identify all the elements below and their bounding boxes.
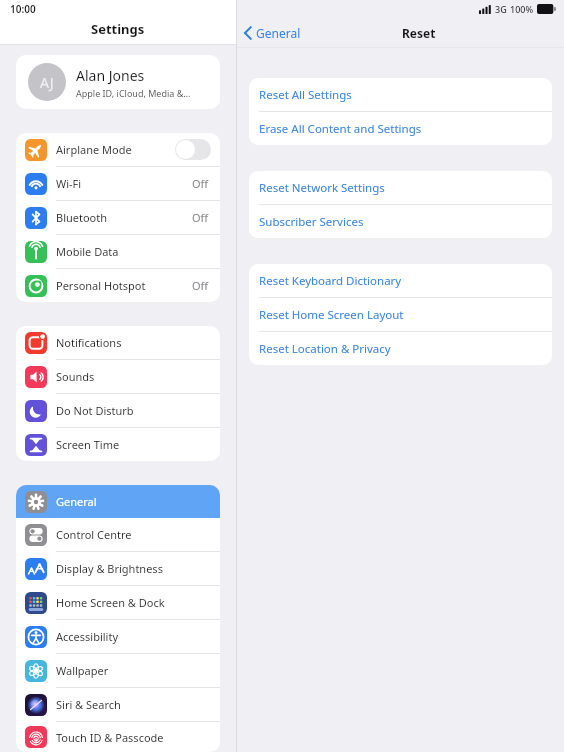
button[interactable]: Screen Time bbox=[16, 428, 220, 461]
button[interactable]: Reset Home Screen Layout bbox=[249, 298, 552, 331]
staticText: Reset All Settings bbox=[259, 87, 352, 103]
staticText: Touch ID & Passcode bbox=[56, 730, 211, 745]
button[interactable]: Bluetooth bbox=[16, 201, 220, 234]
staticText: Alan Jones bbox=[76, 66, 145, 85]
staticText: Erase All Content and Settings bbox=[259, 121, 422, 137]
staticText: Off bbox=[192, 176, 209, 191]
staticText: Display & Brightness bbox=[56, 561, 211, 576]
button[interactable]: Notifications bbox=[16, 326, 220, 359]
staticText: Siri & Search bbox=[56, 697, 211, 712]
button[interactable]: General bbox=[16, 485, 220, 518]
button[interactable]: Reset Location & Privacy bbox=[249, 332, 552, 365]
staticText: Screen Time bbox=[56, 437, 211, 452]
button[interactable]: Sounds bbox=[16, 360, 220, 393]
staticText: Wi-Fi bbox=[56, 176, 192, 191]
staticText: Notifications bbox=[56, 335, 211, 350]
staticText: Sounds bbox=[56, 369, 211, 384]
button[interactable]: Accessibility bbox=[16, 620, 220, 653]
staticText: General bbox=[56, 494, 211, 509]
staticText: 10:00 bbox=[10, 2, 36, 16]
staticText: Bluetooth bbox=[56, 210, 192, 225]
staticText: Control Centre bbox=[56, 527, 211, 542]
staticText: Off bbox=[192, 210, 209, 225]
button[interactable]: Mobile Data bbox=[16, 235, 220, 268]
staticText: Off bbox=[192, 278, 209, 293]
staticText: Settings bbox=[91, 20, 145, 38]
staticText: Personal Hotspot bbox=[56, 278, 192, 293]
staticText: Apple ID, iCloud, Media &… bbox=[76, 87, 191, 99]
button[interactable]: Airplane Mode bbox=[16, 133, 220, 166]
staticText: Subscriber Services bbox=[259, 214, 364, 230]
button[interactable]: Erase All Content and Settings bbox=[249, 112, 552, 145]
button[interactable]: Wi-Fi bbox=[16, 167, 220, 200]
button[interactable]: Do Not Disturb bbox=[16, 394, 220, 427]
button[interactable]: Airplane Mode toggle bbox=[175, 139, 211, 160]
staticText: Reset bbox=[402, 25, 436, 41]
staticText: Reset Keyboard Dictionary bbox=[259, 273, 402, 289]
button[interactable]: Personal Hotspot bbox=[16, 269, 220, 302]
button[interactable]: AJ bbox=[16, 55, 220, 109]
staticText: Home Screen & Dock bbox=[56, 595, 211, 610]
button[interactable]: Wallpaper bbox=[16, 654, 220, 687]
staticText: AJ bbox=[40, 73, 54, 92]
button[interactable]: Subscriber Services bbox=[249, 205, 552, 238]
button[interactable]: Siri & Search bbox=[16, 688, 220, 721]
staticText: Airplane Mode bbox=[56, 142, 175, 157]
staticText: General bbox=[256, 25, 301, 41]
button[interactable]: Display & Brightness bbox=[16, 552, 220, 585]
staticText: Accessibility bbox=[56, 629, 211, 644]
staticText: Reset Location & Privacy bbox=[259, 341, 391, 357]
button[interactable]: Reset Keyboard Dictionary bbox=[249, 264, 552, 297]
staticText: 3G bbox=[495, 3, 507, 15]
button[interactable]: Reset All Settings bbox=[249, 78, 552, 111]
button[interactable]: General bbox=[237, 22, 307, 44]
button[interactable]: Reset Network Settings bbox=[249, 171, 552, 204]
staticText: Mobile Data bbox=[56, 244, 211, 259]
staticText: Reset Network Settings bbox=[259, 180, 385, 196]
button[interactable]: Control Centre bbox=[16, 518, 220, 551]
staticText: 100% bbox=[510, 3, 534, 15]
staticText: Do Not Disturb bbox=[56, 403, 211, 418]
staticText: Wallpaper bbox=[56, 663, 211, 678]
button[interactable]: Touch ID & Passcode bbox=[16, 722, 220, 752]
button[interactable]: Home Screen & Dock bbox=[16, 586, 220, 619]
staticText: Reset Home Screen Layout bbox=[259, 307, 404, 323]
